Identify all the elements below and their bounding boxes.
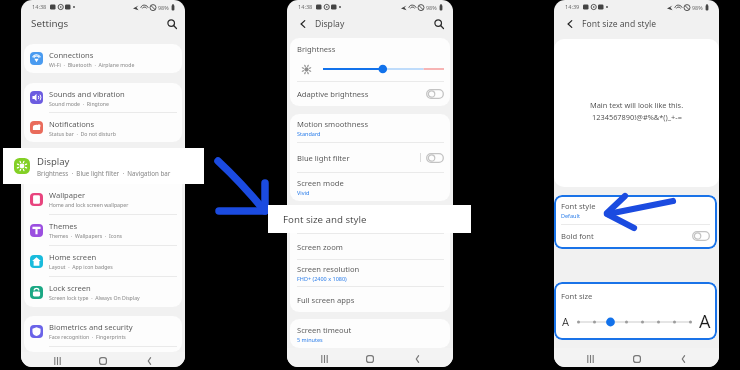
staticText: Blue light filter: [297, 153, 350, 163]
staticText: Lock screen: [49, 283, 91, 293]
button[interactable]: Screen resolution: [290, 260, 450, 286]
staticText: Display: [49, 159, 75, 169]
staticText: Brightness · Blue light filter: [49, 170, 118, 177]
staticText: Full screen apps: [297, 295, 355, 305]
button[interactable]: Wallpaper: [24, 184, 182, 214]
button[interactable]: Notifications: [24, 113, 182, 142]
button[interactable]: Display: [3, 148, 204, 184]
staticText: Status bar · Do not disturb: [49, 130, 116, 137]
staticText: Themes · Wallpapers · Icons: [49, 232, 123, 239]
button[interactable]: Connections: [24, 44, 182, 73]
button[interactable]: Screen timeout: [290, 319, 450, 348]
button[interactable]: Back: [296, 17, 309, 30]
staticText: Font size and style: [297, 216, 363, 226]
staticText: Layout · App icon badges: [49, 263, 113, 270]
button[interactable]: Font style: [554, 195, 717, 224]
staticText: Default: [561, 212, 580, 219]
staticText: Sounds and vibration: [49, 89, 125, 99]
staticText: Notifications: [49, 119, 95, 129]
button[interactable]: Font size: [554, 282, 717, 340]
staticText: Brightness: [297, 44, 336, 54]
button[interactable]: Motion smoothness: [290, 114, 450, 142]
staticText: Display: [37, 155, 70, 168]
button[interactable]: Biometrics and security: [24, 316, 182, 346]
staticText: Font style: [561, 201, 596, 211]
button[interactable]: Blue light filter: [290, 143, 450, 172]
staticText: Font size and style: [582, 18, 657, 30]
staticText: Bold font: [561, 231, 594, 241]
button[interactable]: Font size and style: [290, 208, 450, 233]
button[interactable]: Home: [360, 351, 380, 367]
button[interactable]: Screen mode: [290, 173, 450, 201]
staticText: Vivid: [297, 189, 310, 196]
staticText: Screen timeout: [297, 325, 352, 335]
staticText: 98%: [426, 4, 437, 11]
staticText: 1234567890!@#%&*()_+-=: [592, 112, 682, 122]
staticText: Main text will look like this.: [590, 100, 684, 110]
button[interactable]: Back: [673, 351, 693, 367]
button[interactable]: Recents: [314, 351, 334, 367]
staticText: Screen resolution: [297, 264, 360, 274]
staticText: Connections: [49, 50, 94, 60]
staticText: Settings: [31, 17, 69, 30]
staticText: Adaptive brightness: [297, 89, 369, 99]
button[interactable]: Search: [165, 17, 178, 30]
staticText: Wi-Fi · Bluetooth · Airplane mode: [49, 61, 135, 68]
button[interactable]: Adaptive brightness: [290, 82, 450, 106]
button[interactable]: Home screen: [24, 246, 182, 276]
staticText: 5 minutes: [297, 336, 323, 343]
button[interactable]: Recents: [580, 351, 600, 367]
staticText: A: [562, 314, 570, 329]
staticText: Sound mode · Ringtone: [49, 100, 109, 107]
staticText: Screen mode: [297, 178, 344, 188]
button[interactable]: Themes: [24, 215, 182, 245]
staticText: 14:39: [565, 3, 580, 11]
staticText: Face recognition · Fingerprints: [49, 333, 126, 340]
button[interactable]: Back: [407, 351, 427, 367]
staticText: Motion smoothness: [297, 119, 369, 129]
staticText: Wallpaper: [49, 190, 86, 200]
staticText: A: [699, 309, 711, 334]
staticText: Font size and style: [283, 213, 367, 226]
button[interactable]: Search: [432, 17, 446, 31]
button[interactable]: Recents: [47, 355, 67, 367]
button[interactable]: Bold font: [554, 225, 717, 247]
staticText: Font size: [561, 291, 593, 301]
staticText: 98%: [692, 4, 703, 11]
staticText: Screen lock type · Always On Display: [49, 294, 140, 301]
staticText: FHD+ (2400 x 1080): [297, 275, 347, 282]
button[interactable]: Display: [24, 153, 182, 183]
staticText: Home and lock screen wallpaper: [49, 201, 129, 208]
staticText: 14:38: [298, 3, 313, 11]
button[interactable]: Sounds and vibration: [24, 83, 182, 112]
button[interactable]: Lock screen: [24, 277, 182, 307]
button[interactable]: Back: [139, 355, 159, 367]
button[interactable]: Back: [563, 17, 576, 30]
staticText: Biometrics and security: [49, 322, 133, 332]
button[interactable]: Home: [93, 355, 113, 367]
staticText: 14:38: [32, 3, 47, 11]
staticText: Brightness · Blue light filter · Navigat…: [37, 169, 171, 177]
staticText: Display: [315, 18, 345, 30]
button[interactable]: Font size and style: [268, 205, 471, 233]
staticText: Screen zoom: [297, 242, 343, 252]
button[interactable]: Screen zoom: [290, 234, 450, 259]
button[interactable]: Full screen apps: [290, 287, 450, 312]
button[interactable]: Home: [627, 351, 647, 367]
staticText: 98%: [158, 4, 169, 11]
staticText: Standard: [297, 130, 321, 137]
staticText: Themes: [49, 221, 78, 231]
staticText: Home screen: [49, 252, 97, 262]
